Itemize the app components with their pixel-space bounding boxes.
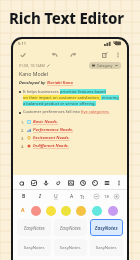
staticText: on their impact on customer satisfaction… xyxy=(23,95,101,100)
staticText: EasyNotes xyxy=(96,245,117,251)
button[interactable]: Text xyxy=(16,177,27,188)
button[interactable]: EasyNotes xyxy=(90,239,123,256)
staticText: Rich Text Editor xyxy=(9,8,140,28)
staticText: a balanced product or service offering. xyxy=(23,101,96,106)
button[interactable]: Strikethrough xyxy=(67,192,76,201)
button[interactable]: Tag xyxy=(89,177,100,188)
staticText: Noriaki Kano xyxy=(47,80,73,86)
staticText: ensuring xyxy=(101,95,119,100)
button[interactable]: List xyxy=(101,177,112,188)
staticText: EasyNotes xyxy=(24,245,45,251)
button[interactable]: Undo xyxy=(50,50,59,59)
button[interactable]: 3. xyxy=(19,134,121,142)
staticText: It helps businesses xyxy=(23,89,60,94)
button[interactable]: Highlight color xyxy=(73,205,89,216)
button[interactable]: Reminder xyxy=(77,177,88,188)
staticText: A xyxy=(21,207,25,214)
staticText: U xyxy=(54,193,58,200)
staticText: Indifferent Needs. xyxy=(33,143,70,149)
button[interactable]: Highlight color xyxy=(58,205,73,216)
staticText: Developed by xyxy=(19,80,47,86)
button[interactable]: Text style xyxy=(78,192,87,201)
button[interactable]: More options xyxy=(113,50,122,59)
button[interactable]: Redo xyxy=(68,50,77,59)
button[interactable]: Highlight color xyxy=(105,205,121,216)
button[interactable]: EasyNotes xyxy=(90,219,123,236)
button[interactable]: Category xyxy=(89,62,121,69)
button[interactable]: 4. xyxy=(19,142,121,150)
button[interactable]: Checklist xyxy=(28,177,39,188)
button[interactable]: EasyNotes xyxy=(17,239,51,256)
staticText: Basic Needs. xyxy=(33,119,58,125)
staticText: I xyxy=(39,193,41,200)
staticText: 3. xyxy=(21,136,25,141)
staticText: 01:08, 10:12AM xyxy=(19,63,45,68)
staticText: EasyNotes xyxy=(60,245,81,251)
staticText: 5:11 xyxy=(18,41,26,46)
button[interactable]: Image xyxy=(65,177,76,188)
button[interactable]: EasyNotes xyxy=(54,239,87,256)
button[interactable]: EasyNotes xyxy=(17,219,51,236)
button[interactable]: Highlight color xyxy=(43,205,58,216)
button[interactable]: 2. xyxy=(19,126,121,134)
button[interactable]: 1. xyxy=(19,118,121,126)
button[interactable]: Share xyxy=(100,50,109,59)
staticText: five categories: xyxy=(81,109,110,114)
staticText: Tt xyxy=(80,194,85,200)
button[interactable]: Highlight color xyxy=(28,205,43,216)
button[interactable]: Italic xyxy=(35,192,44,201)
button[interactable]: Increase size xyxy=(112,192,121,201)
staticText: B xyxy=(22,193,26,200)
staticText: 1. xyxy=(21,120,25,125)
staticText: A xyxy=(70,193,74,200)
staticText: prioritize features based xyxy=(60,89,106,94)
staticText: 18 xyxy=(104,194,109,200)
staticText: Customer preferences fall into xyxy=(23,109,81,114)
button[interactable]: Highlight color xyxy=(89,205,105,216)
staticText: 2. xyxy=(21,128,25,133)
staticText: Performance Needs. xyxy=(33,127,74,133)
button[interactable]: Done xyxy=(18,50,27,59)
staticText: EasyNotes xyxy=(95,225,118,231)
button[interactable]: Underline xyxy=(51,192,60,201)
staticText: Kano Model xyxy=(19,70,49,77)
button[interactable]: More xyxy=(113,177,124,188)
button[interactable]: Bold xyxy=(19,192,28,201)
staticText: EasyNotes xyxy=(24,225,45,231)
button[interactable]: Microphone xyxy=(40,177,51,188)
staticText: Category xyxy=(97,63,113,68)
button[interactable]: Attach xyxy=(52,177,63,188)
staticText: EasyNotes xyxy=(60,225,81,231)
staticText: Excitement Needs. xyxy=(33,135,70,141)
button[interactable]: EasyNotes xyxy=(54,219,87,236)
staticText: 4. xyxy=(21,144,25,149)
button[interactable]: Text color xyxy=(19,207,26,214)
button[interactable]: Decrease size xyxy=(92,192,101,201)
